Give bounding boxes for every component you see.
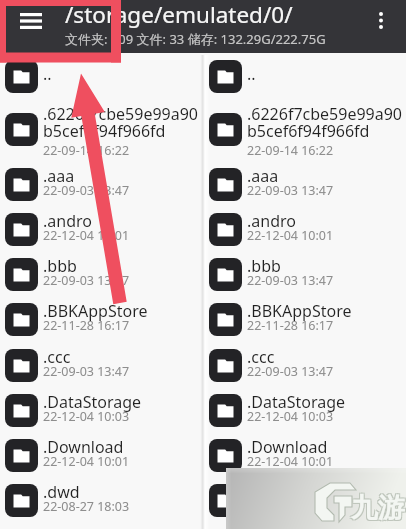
staticText: .DataStorage [43, 391, 142, 413]
staticText: .aaa [43, 165, 75, 187]
staticText: .Download [247, 436, 328, 458]
staticText: 22-12-04 10:03 [43, 408, 130, 425]
staticText: 九游 [350, 490, 404, 524]
button[interactable]: More options [366, 5, 396, 35]
button[interactable] [204, 107, 404, 157]
button[interactable] [204, 252, 404, 296]
staticText: 九游 [351, 491, 405, 525]
button[interactable] [204, 207, 404, 251]
button[interactable] [204, 343, 404, 387]
staticText: .bbb [43, 255, 77, 277]
staticText: 22-09-03 13:47 [43, 363, 130, 380]
staticText: .bbb [247, 255, 281, 277]
button[interactable] [204, 297, 404, 341]
staticText: .dwd [43, 481, 80, 503]
staticText: 22-09-14 16:22 [247, 142, 334, 159]
button[interactable] [204, 54, 404, 98]
staticText: 九游 [352, 490, 406, 524]
button[interactable] [0, 433, 200, 477]
staticText: .dwd [247, 481, 284, 503]
staticText: 22-09-03 13:47 [247, 272, 334, 289]
staticText: 22-12-04 10:01 [247, 227, 334, 244]
staticText: 九游 [352, 492, 406, 526]
staticText: .. [43, 63, 52, 85]
staticText: 22-09-03 13:47 [43, 272, 130, 289]
staticText: 九游 [350, 492, 404, 526]
staticText: .6226f7cbe59e99a90 b5cef6f94f966fd [43, 103, 199, 142]
staticText: 22-12-04 10:01 [43, 453, 130, 470]
staticText: 22-09-14 16:22 [43, 142, 130, 159]
staticText: .andro [43, 210, 92, 232]
staticText: .6226f7cbe59e99a90 b5cef6f94f966fd [247, 103, 403, 142]
staticText: 22-08-27 18:03 [247, 498, 334, 515]
staticText: 22-09-03 13:47 [247, 363, 334, 380]
staticText: 22-12-04 10:03 [247, 408, 334, 425]
staticText: .DataStorage [247, 391, 346, 413]
button[interactable] [0, 478, 200, 522]
staticText: /storage/emulated/0/ [65, 0, 293, 30]
staticText: .ccc [247, 346, 275, 368]
button[interactable] [0, 162, 200, 206]
button[interactable] [204, 478, 404, 522]
button[interactable] [0, 297, 200, 341]
staticText: 22-12-04 10:01 [247, 453, 334, 470]
button[interactable] [204, 162, 404, 206]
button[interactable] [0, 54, 200, 98]
button[interactable] [0, 207, 200, 251]
button[interactable] [0, 388, 200, 432]
button[interactable] [204, 388, 404, 432]
button[interactable] [0, 343, 200, 387]
staticText: .. [247, 63, 256, 85]
staticText: .andro [247, 210, 296, 232]
button[interactable]: Menu [8, 0, 54, 44]
staticText: .ccc [43, 346, 71, 368]
staticText: .BBKAppStore [247, 300, 352, 322]
staticText: 22-08-27 18:03 [43, 498, 130, 515]
staticText: 22-11-28 16:17 [247, 317, 334, 334]
staticText: 文件夹: 109 文件: 33 储存: 132.29G/222.75G [65, 30, 326, 48]
staticText: 22-11-28 16:17 [43, 317, 130, 334]
button[interactable] [0, 252, 200, 296]
staticText: 22-09-03 13:47 [247, 182, 334, 199]
staticText: 22-09-03 13:47 [43, 182, 130, 199]
staticText: .aaa [247, 165, 279, 187]
button[interactable] [204, 433, 404, 477]
staticText: .BBKAppStore [43, 300, 148, 322]
staticText: .Download [43, 436, 124, 458]
button[interactable] [0, 107, 200, 157]
staticText: 22-12-04 10:01 [43, 227, 130, 244]
